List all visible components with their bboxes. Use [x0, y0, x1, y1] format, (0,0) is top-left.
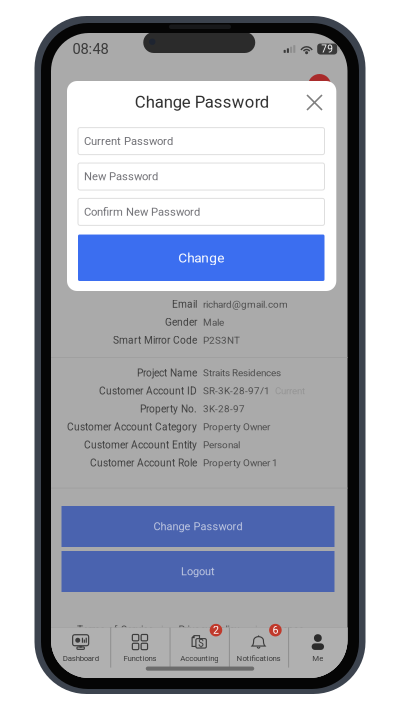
- staticText: License: [270, 624, 303, 636]
- staticText: SR-3K-28-97/1: [203, 385, 270, 397]
- staticText: Change Password: [135, 92, 269, 112]
- staticText: |: [255, 624, 257, 636]
- button[interactable]: Close: [299, 87, 329, 117]
- staticText: Functions: [123, 654, 156, 663]
- staticText: Confirm New Password: [84, 205, 200, 218]
- button[interactable]: Dashboard: [51, 628, 110, 678]
- staticText: 3K-28-97: [203, 403, 245, 415]
- staticText: Me: [312, 654, 323, 663]
- staticText: Logout: [181, 565, 215, 578]
- staticText: New Password: [84, 170, 158, 183]
- staticText: Property No.: [140, 403, 197, 415]
- staticText: 79: [321, 43, 333, 55]
- staticText: Customer Account ID: [99, 385, 197, 397]
- button[interactable]: Change Password: [61, 506, 334, 547]
- button[interactable]: Me: [288, 628, 347, 678]
- staticText: Customer Account Role: [90, 457, 197, 469]
- staticText: richard@gmail.com: [203, 299, 288, 310]
- staticText: Privacy Policy: [178, 624, 239, 636]
- staticText: Accounting: [180, 654, 218, 663]
- staticText: Property Owner 1: [203, 457, 278, 469]
- staticText: Current: [275, 385, 305, 397]
- staticText: Current Password: [84, 134, 173, 148]
- staticText: Smart Mirror Code: [113, 334, 197, 346]
- staticText: Email: [172, 298, 197, 310]
- button[interactable]: $: [170, 628, 229, 678]
- staticText: 6: [272, 624, 278, 636]
- staticText: Project Name: [137, 367, 197, 379]
- staticText: Gender: [165, 316, 197, 328]
- staticText: Notifications: [236, 654, 280, 663]
- staticText: Straits Residences: [203, 367, 281, 379]
- staticText: Customer Account Category: [67, 421, 197, 433]
- button[interactable]: Functions: [110, 628, 170, 678]
- staticText: Customer Account Entity: [84, 439, 197, 451]
- staticText: $: [198, 637, 204, 649]
- staticText: Dashboard: [63, 654, 99, 663]
- staticText: Personal: [203, 439, 240, 451]
- button[interactable]: Logout: [61, 551, 334, 592]
- button[interactable]: Notifications: [229, 628, 288, 678]
- staticText: Male: [203, 317, 224, 328]
- staticText: 08:48: [72, 40, 108, 58]
- staticText: Change Password: [153, 520, 242, 533]
- staticText: 2: [213, 624, 219, 636]
- staticText: Change: [178, 250, 224, 266]
- staticText: P2S3NT: [203, 335, 240, 346]
- staticText: Property Owner: [203, 421, 270, 433]
- staticText: |: [161, 624, 163, 636]
- button[interactable]: Change: [78, 234, 324, 281]
- staticText: Terms of Service: [77, 624, 153, 636]
